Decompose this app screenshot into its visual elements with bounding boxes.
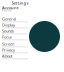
staticText: Profile <box>2 9 12 12</box>
button[interactable]: Privacy <box>2 47 28 53</box>
button[interactable]: Sounds <box>2 28 28 34</box>
staticText: Screen <box>2 41 14 47</box>
staticText: Focus <box>2 34 12 40</box>
button[interactable]: Screen <box>2 41 28 47</box>
staticText: General <box>2 16 16 22</box>
staticText: Sounds <box>2 28 14 34</box>
staticText: About <box>2 53 12 59</box>
staticText: Privacy <box>2 47 15 53</box>
button[interactable]: Focus <box>2 34 28 40</box>
button[interactable]: About <box>2 53 28 59</box>
staticText: Display <box>2 22 15 28</box>
button[interactable]: Display <box>2 22 28 28</box>
staticText: Settings <box>11 0 28 6</box>
staticText: Account <box>2 5 19 10</box>
button[interactable]: General <box>2 16 28 22</box>
